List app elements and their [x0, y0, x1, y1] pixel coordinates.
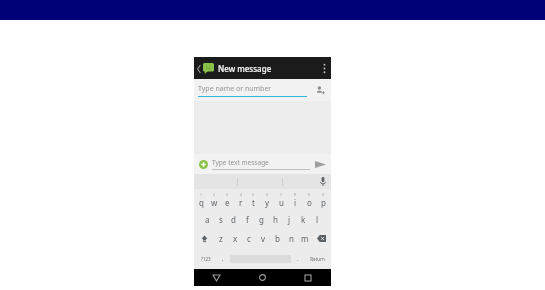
- button[interactable]: 6: [260, 189, 274, 210]
- staticText: w: [211, 197, 218, 208]
- button[interactable]: b: [270, 229, 284, 248]
- staticText: 3: [226, 192, 229, 197]
- button[interactable]: Send: [313, 157, 328, 172]
- staticText: x: [233, 233, 238, 244]
- staticText: d: [231, 214, 236, 225]
- staticText: 2: [213, 192, 216, 197]
- button[interactable]: d: [227, 210, 240, 229]
- staticText: y: [265, 197, 270, 208]
- button[interactable]: Home: [239, 269, 285, 286]
- button[interactable]: ?123: [195, 249, 217, 268]
- staticText: 4: [240, 192, 243, 197]
- staticText: o: [307, 197, 312, 208]
- staticText: n: [289, 233, 294, 244]
- button[interactable]: Recent apps: [285, 269, 331, 286]
- staticText: s: [219, 214, 223, 225]
- button[interactable]: Return: [304, 249, 330, 268]
- button[interactable]: 9: [302, 189, 316, 210]
- button[interactable]: s: [214, 210, 227, 229]
- button[interactable]: .: [292, 249, 304, 268]
- button[interactable]: 7: [274, 189, 288, 210]
- staticText: u: [279, 197, 284, 208]
- staticText: Return: [310, 256, 325, 262]
- staticText: p: [321, 197, 326, 208]
- button[interactable]: Add contact: [313, 83, 327, 97]
- button[interactable]: j: [282, 210, 296, 229]
- button[interactable]: 4: [234, 189, 247, 210]
- staticText: l: [316, 214, 319, 225]
- button[interactable]: Back: [194, 269, 239, 286]
- button[interactable]: h: [268, 210, 282, 229]
- button[interactable]: f: [240, 210, 254, 229]
- button[interactable]: m: [298, 229, 312, 248]
- button[interactable]: a: [201, 210, 214, 229]
- button[interactable]: z: [214, 229, 228, 248]
- button[interactable]: 0: [316, 189, 330, 210]
- button[interactable]: c: [242, 229, 256, 248]
- staticText: z: [219, 233, 223, 244]
- staticText: 5: [252, 192, 255, 197]
- button[interactable]: 1: [195, 189, 208, 210]
- staticText: m: [301, 233, 309, 244]
- button[interactable]: Voice input: [315, 174, 331, 189]
- button[interactable]: g: [254, 210, 268, 229]
- button[interactable]: ,: [217, 249, 229, 268]
- staticText: New message: [218, 63, 272, 74]
- staticText: ,: [222, 255, 224, 263]
- staticText: a: [205, 214, 210, 225]
- staticText: 8: [294, 192, 297, 197]
- staticText: 9: [308, 192, 311, 197]
- staticText: e: [225, 197, 230, 208]
- staticText: Type text message: [212, 158, 269, 167]
- button[interactable]: x: [228, 229, 242, 248]
- button[interactable]: Type text message: [212, 158, 310, 170]
- button[interactable]: Shift: [195, 229, 214, 248]
- button[interactable]: Type name or number: [198, 84, 307, 97]
- staticText: v: [261, 233, 266, 244]
- staticText: q: [199, 197, 204, 208]
- staticText: i: [294, 197, 297, 208]
- staticText: 0: [322, 192, 325, 197]
- button[interactable]: 3: [221, 189, 234, 210]
- staticText: .: [297, 255, 299, 263]
- button[interactable]: v: [256, 229, 270, 248]
- button[interactable]: 2: [208, 189, 221, 210]
- staticText: r: [239, 197, 243, 208]
- staticText: 6: [266, 192, 269, 197]
- button[interactable]: Backspace: [312, 229, 330, 248]
- button[interactable]: k: [296, 210, 310, 229]
- button[interactable]: Back: [194, 57, 216, 79]
- staticText: t: [252, 197, 255, 208]
- staticText: 7: [280, 192, 283, 197]
- staticText: b: [275, 233, 280, 244]
- button[interactable]: Add attachment: [197, 158, 210, 171]
- button[interactable]: n: [284, 229, 298, 248]
- button[interactable]: 8: [288, 189, 302, 210]
- staticText: h: [273, 214, 278, 225]
- staticText: j: [288, 214, 291, 225]
- staticText: g: [259, 214, 264, 225]
- staticText: c: [247, 233, 251, 244]
- staticText: 1: [200, 192, 203, 197]
- staticText: f: [246, 214, 249, 225]
- staticText: ?123: [201, 256, 211, 262]
- button[interactable]: 5: [247, 189, 260, 210]
- staticText: Type name or number: [198, 84, 272, 94]
- staticText: k: [301, 214, 306, 225]
- button[interactable]: More options: [317, 57, 331, 79]
- button[interactable]: l: [310, 210, 324, 229]
